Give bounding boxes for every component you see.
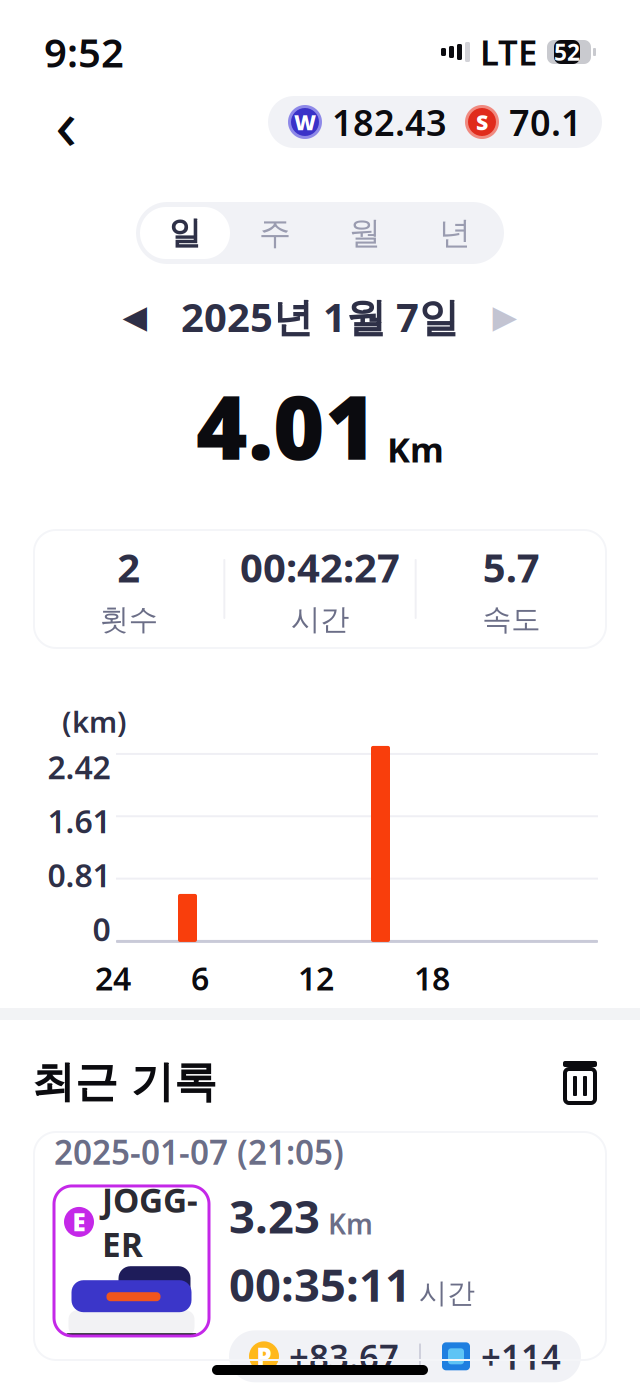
button[interactable]: Back: [38, 94, 94, 150]
staticText: 12: [298, 957, 334, 999]
staticText: W: [294, 108, 316, 136]
staticText: 월: [349, 213, 381, 253]
staticText: E: [72, 1206, 85, 1238]
staticText: (km): [62, 702, 127, 741]
button[interactable]: 주: [230, 207, 320, 259]
staticText: 시간: [419, 1276, 475, 1310]
button[interactable]: 일: [140, 207, 230, 259]
staticText: 5.7: [483, 540, 540, 593]
button[interactable]: Next day: [479, 291, 531, 343]
staticText: 0.81: [47, 854, 110, 896]
staticText: ▶: [492, 298, 517, 335]
staticText: 24: [95, 957, 131, 999]
staticText: 2025년 1월 7일: [181, 290, 459, 343]
staticText: 52: [554, 37, 580, 67]
staticText: 182.43: [332, 98, 447, 146]
staticText: 4.01: [196, 367, 377, 484]
button[interactable]: W: [268, 96, 602, 148]
staticText: ◀: [122, 298, 147, 335]
staticText: 70.1: [509, 98, 582, 146]
staticText: ‹: [55, 74, 77, 170]
staticText: Km: [387, 426, 444, 472]
button[interactable]: 년: [410, 207, 500, 259]
staticText: +114: [481, 1333, 561, 1379]
staticText: 3.23: [229, 1186, 320, 1246]
staticText: 시간: [291, 601, 349, 637]
staticText: 최근 기록: [32, 1056, 217, 1108]
staticText: 2: [117, 540, 140, 593]
staticText: JOGGER: [102, 1178, 198, 1266]
staticText: 0: [92, 908, 110, 950]
staticText: 18: [414, 957, 450, 999]
staticText: 00:35:11: [229, 1254, 411, 1314]
staticText: 2.42: [47, 746, 110, 788]
staticText: 6: [191, 957, 209, 999]
staticText: P: [256, 1340, 271, 1372]
staticText: 일: [169, 213, 201, 253]
staticText: Km: [328, 1205, 373, 1242]
staticText: 1.61: [47, 800, 110, 842]
staticText: LTE: [480, 29, 537, 75]
staticText: S: [476, 108, 488, 136]
staticText: 2025-01-07 (21:05): [54, 1130, 344, 1174]
staticText: 횟수: [100, 601, 158, 637]
staticText: 9:52: [44, 25, 124, 78]
button[interactable]: 월: [320, 207, 410, 259]
staticText: 년: [439, 213, 471, 253]
button[interactable]: 2025-01-07 (21:05): [34, 1132, 606, 1360]
button[interactable]: Delete records: [552, 1054, 608, 1110]
staticText: 00:42:27: [240, 540, 400, 593]
button[interactable]: Previous day: [109, 291, 161, 343]
staticText: 주: [259, 213, 291, 253]
staticText: 속도: [482, 601, 540, 637]
staticText: +83.67: [289, 1333, 399, 1379]
